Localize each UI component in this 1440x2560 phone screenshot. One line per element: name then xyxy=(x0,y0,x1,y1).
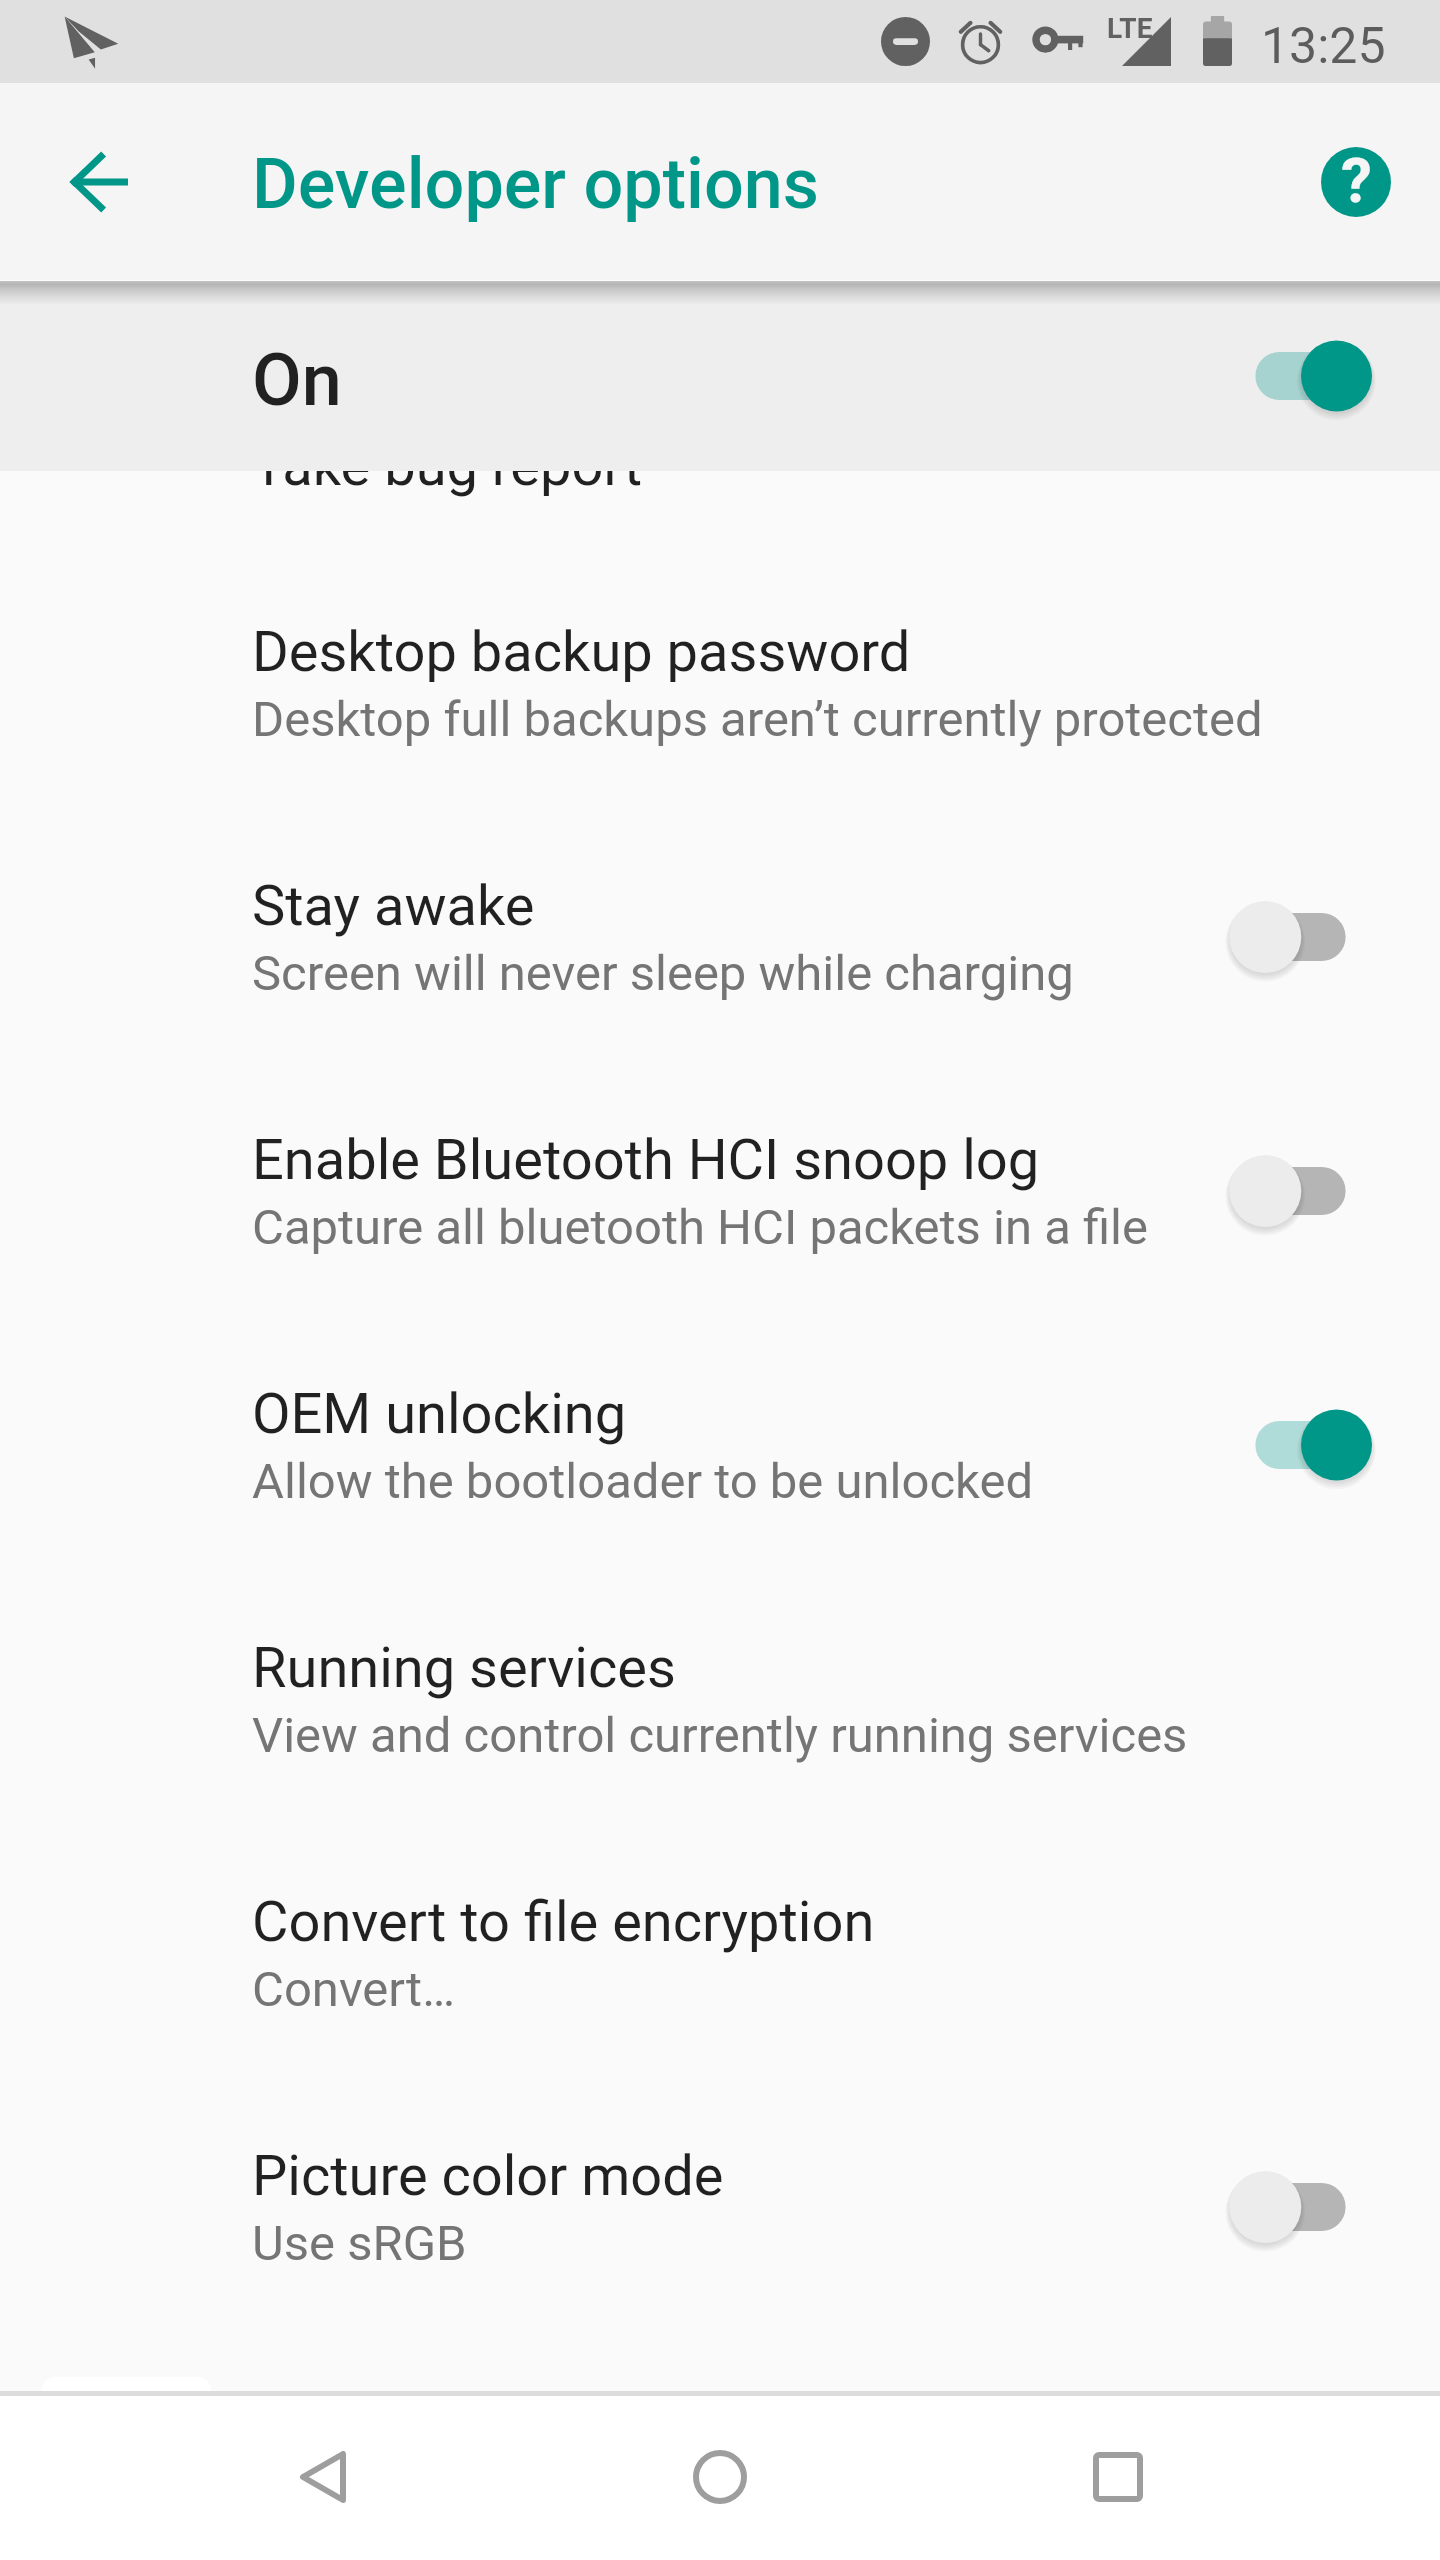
button[interactable]: Navigate up xyxy=(42,126,154,238)
button[interactable]: Home xyxy=(645,2403,795,2553)
staticText: Desktop full backups aren’t currently pr… xyxy=(252,691,1263,748)
staticText: On xyxy=(252,338,342,422)
button[interactable]: Help xyxy=(1300,126,1412,238)
staticText: 13:25 xyxy=(1261,17,1386,76)
staticText: Convert to file encryption xyxy=(252,1889,875,1955)
button[interactable]: Back xyxy=(248,2403,398,2553)
staticText: Convert… xyxy=(252,1961,455,2018)
staticText: Running services xyxy=(252,1635,676,1701)
staticText: View and control currently running servi… xyxy=(252,1707,1188,1764)
button[interactable]: On xyxy=(1240,321,1400,431)
staticText: Stay awake xyxy=(252,873,535,939)
staticText: LTE xyxy=(1107,12,1153,45)
button[interactable]: Take bug report xyxy=(0,375,1440,556)
staticText: Use sRGB xyxy=(252,2215,467,2272)
button[interactable]: OEM unlocking xyxy=(0,1318,1440,1572)
button[interactable]: On xyxy=(1240,1390,1400,1500)
staticText: Picture color mode xyxy=(252,2143,724,2209)
button[interactable]: Desktop backup password xyxy=(0,556,1440,810)
staticText: Allow the bootloader to be unlocked xyxy=(252,1453,1034,1510)
staticText: ? xyxy=(1341,147,1372,214)
staticText: Developer options xyxy=(252,143,819,225)
staticText: Take bug report xyxy=(252,433,643,499)
button[interactable]: Enable Bluetooth HCI snoop log xyxy=(0,1064,1440,1318)
staticText: OEM unlocking xyxy=(252,1381,627,1447)
button[interactable]: Running services xyxy=(0,1572,1440,1826)
button[interactable]: Off xyxy=(1240,882,1400,992)
button[interactable]: Stay awake xyxy=(0,810,1440,1064)
button[interactable]: Recent apps xyxy=(1043,2403,1193,2553)
button[interactable]: Off xyxy=(1240,1136,1400,1246)
button[interactable]: Picture color mode xyxy=(0,2080,1440,2334)
button[interactable]: Off xyxy=(1240,2152,1400,2262)
button[interactable]: Convert to file encryption xyxy=(0,1826,1440,2080)
staticText: Enable Bluetooth HCI snoop log xyxy=(252,1127,1040,1193)
staticText: Capture all bluetooth HCI packets in a f… xyxy=(252,1199,1149,1256)
button[interactable]: On xyxy=(0,280,1440,471)
staticText: Screen will never sleep while charging xyxy=(252,945,1074,1002)
staticText: Desktop backup password xyxy=(252,619,911,685)
